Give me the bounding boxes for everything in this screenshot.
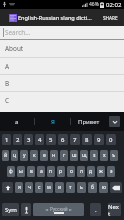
button[interactable]: с <box>35 182 43 193</box>
button[interactable]: ц <box>11 150 18 161</box>
staticText: х <box>103 152 106 159</box>
button[interactable]: 9 <box>94 134 104 145</box>
button[interactable]: в <box>27 166 35 177</box>
button[interactable]: Я <box>35 112 70 131</box>
button[interactable]: Привет <box>71 112 106 131</box>
staticText: 7 <box>73 136 77 144</box>
staticText: ш <box>72 152 77 159</box>
staticText: ъ <box>112 152 116 159</box>
button[interactable]: ъ <box>110 150 118 161</box>
button[interactable]: г <box>60 150 68 161</box>
button[interactable]: у <box>20 150 28 161</box>
staticText: Русский <box>50 206 68 212</box>
staticText: 6 <box>61 136 65 144</box>
button[interactable]: ш <box>70 150 78 161</box>
button[interactable]: з <box>90 150 98 161</box>
other: Voice input <box>21 203 31 216</box>
staticText: щ <box>82 152 87 159</box>
button[interactable]: а <box>37 166 45 177</box>
staticText: с <box>38 184 41 191</box>
button[interactable]: A <box>0 58 124 74</box>
staticText: 2 <box>16 136 20 144</box>
staticText: е <box>43 152 46 159</box>
staticText: Я <box>51 118 55 126</box>
staticText: Привет <box>78 118 100 126</box>
button[interactable]: м <box>45 182 53 193</box>
staticText: 3 <box>27 136 31 144</box>
staticText: ◄ <box>45 207 49 212</box>
button[interactable]: п <box>47 166 55 177</box>
staticText: ц <box>13 152 17 159</box>
button[interactable]: 0 <box>106 134 116 145</box>
button[interactable]: 3 <box>24 134 33 145</box>
button[interactable]: C <box>0 92 124 108</box>
button[interactable]: я <box>15 182 23 193</box>
button[interactable]: App icon <box>9 14 17 22</box>
button[interactable]: б <box>88 182 97 193</box>
staticText: ь <box>80 184 83 191</box>
button[interactable]: х <box>100 150 108 161</box>
staticText: а <box>40 168 43 175</box>
button[interactable]: Backspace <box>110 182 122 193</box>
staticText: ы <box>19 168 23 175</box>
button[interactable]: щ <box>80 150 88 161</box>
button[interactable]: о <box>67 166 75 177</box>
button[interactable]: 6 <box>58 134 68 145</box>
staticText: а <box>15 118 19 126</box>
button[interactable]: Search... <box>0 26 124 39</box>
button[interactable]: т <box>66 182 75 193</box>
button[interactable]: 2 <box>13 134 22 145</box>
staticText: ж <box>99 168 103 175</box>
button[interactable]: ю <box>99 182 108 193</box>
button[interactable]: Sym <box>2 203 19 216</box>
staticText: к <box>33 152 36 159</box>
button[interactable]: р <box>57 166 65 177</box>
button[interactable]: д <box>87 166 95 177</box>
button[interactable]: е <box>40 150 48 161</box>
staticText: Sym <box>5 206 17 214</box>
staticText: л <box>80 168 83 175</box>
button[interactable]: ф <box>7 166 15 177</box>
button[interactable]: л <box>77 166 85 177</box>
button[interactable]: й <box>2 150 9 161</box>
button[interactable]: н <box>50 150 58 161</box>
button[interactable]: э <box>107 166 115 177</box>
button[interactable]: и <box>55 182 64 193</box>
staticText: SHARE <box>103 15 118 21</box>
button[interactable]: 5 <box>46 134 56 145</box>
button[interactable]: к <box>30 150 38 161</box>
button[interactable]: . <box>90 203 101 216</box>
button[interactable]: ◄ <box>33 203 84 216</box>
button[interactable]: ч <box>25 182 33 193</box>
button[interactable]: ж <box>97 166 105 177</box>
button[interactable]: SHARE <box>100 12 121 24</box>
staticText: ю <box>102 184 106 191</box>
button[interactable]: 8 <box>82 134 92 145</box>
button[interactable] <box>2 182 13 193</box>
button[interactable]: 1 <box>2 134 11 145</box>
button[interactable]: 4 <box>35 134 44 145</box>
staticText: н <box>52 152 56 159</box>
staticText: 46% <box>89 1 99 8</box>
staticText: э <box>110 168 113 175</box>
button[interactable]: а <box>0 112 34 131</box>
staticText: д <box>89 168 93 175</box>
staticText: р <box>59 168 63 175</box>
staticText: 02:02 <box>106 1 122 9</box>
button[interactable]: ь <box>77 182 86 193</box>
button[interactable]: B <box>0 75 124 91</box>
staticText: B <box>5 79 10 88</box>
button[interactable]: About <box>0 40 124 57</box>
button[interactable]: Voice input <box>21 203 31 216</box>
button[interactable]: 7 <box>70 134 80 145</box>
staticText: A <box>5 62 10 71</box>
staticText: 9 <box>97 136 101 144</box>
button[interactable]: ы <box>17 166 25 177</box>
staticText: 8 <box>85 136 89 144</box>
staticText: з <box>93 152 96 159</box>
button[interactable]: Next <box>108 203 121 216</box>
staticText: ч <box>28 184 31 191</box>
button[interactable]: More suggestions <box>109 116 120 127</box>
other: Backspace <box>110 182 122 193</box>
staticText: C <box>5 96 10 105</box>
